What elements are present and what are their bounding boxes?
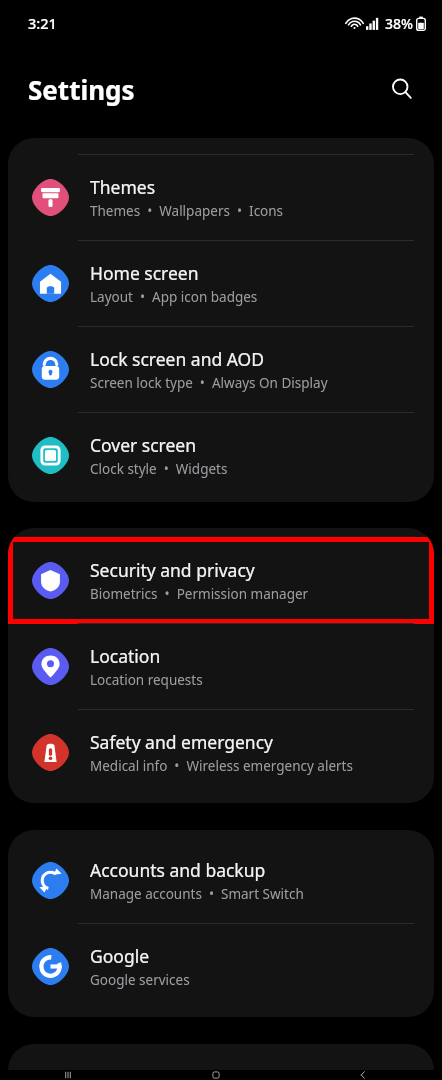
staticText: Cover screen	[90, 433, 197, 457]
button[interactable]: Location	[8, 624, 434, 709]
button[interactable]: Cover screen	[8, 413, 434, 498]
staticText: Themes	[90, 175, 156, 199]
staticText: Home screen	[90, 261, 199, 285]
staticText: Security and privacy	[90, 558, 255, 582]
staticText: Biometrics • Permission manager	[90, 585, 309, 603]
staticText: Location	[90, 644, 161, 668]
staticText: Location requests	[90, 671, 203, 689]
staticText: Google	[90, 944, 150, 968]
button[interactable]: Back	[295, 1070, 442, 1080]
staticText: Layout • App icon badges	[90, 288, 258, 306]
button[interactable]: Recent apps	[0, 1070, 148, 1080]
button[interactable]: Lock screen and AOD	[8, 327, 434, 412]
staticText: Screen lock type • Always On Display	[90, 374, 328, 392]
staticText: Settings	[28, 72, 135, 107]
button[interactable]: Security and privacy	[8, 538, 434, 623]
button[interactable]: Search	[380, 67, 424, 111]
staticText: Themes • Wallpapers • Icons	[90, 202, 284, 220]
staticText: Medical info • Wireless emergency alerts	[90, 757, 353, 775]
button[interactable]: Home	[148, 1070, 295, 1080]
staticText: Accounts and backup	[90, 858, 266, 882]
staticText: 3:21	[28, 13, 57, 33]
button[interactable]: Themes	[8, 155, 434, 240]
staticText: Clock style • Widgets	[90, 460, 228, 478]
button[interactable]: Accounts and backup	[8, 838, 434, 923]
staticText: Safety and emergency	[90, 730, 273, 754]
staticText: Google services	[90, 971, 190, 989]
button[interactable]: Safety and emergency	[8, 710, 434, 795]
staticText: Manage accounts • Smart Switch	[90, 885, 304, 903]
button[interactable]: Home screen	[8, 241, 434, 326]
staticText: Lock screen and AOD	[90, 347, 265, 371]
staticText: 38%	[385, 14, 413, 33]
button[interactable]: Google	[8, 924, 434, 1009]
